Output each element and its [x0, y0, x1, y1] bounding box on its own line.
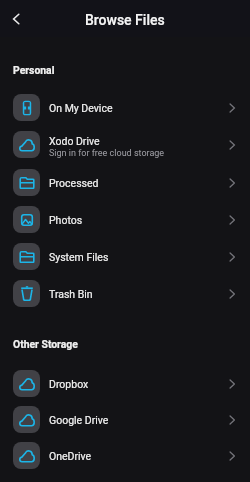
button[interactable]: System Files	[0, 238, 250, 275]
staticText: On My Device	[49, 102, 113, 114]
staticText: Browse Files	[85, 12, 165, 28]
staticText: Personal	[13, 64, 55, 76]
staticText: Processed	[49, 177, 99, 189]
button[interactable]: Dropbox	[0, 365, 250, 402]
staticText: OneDrive	[49, 450, 92, 462]
staticText: Photos	[49, 214, 83, 226]
button[interactable]: Google Drive	[0, 401, 250, 438]
button[interactable]: Back	[3, 6, 29, 32]
staticText: Dropbox	[49, 378, 89, 390]
button[interactable]: OneDrive	[0, 437, 250, 474]
staticText: Xodo Drive	[49, 135, 100, 147]
staticText: Other Storage	[13, 338, 78, 350]
button[interactable]: On My Device	[0, 89, 250, 126]
button[interactable]: Trash Bin	[0, 275, 250, 312]
staticText: Google Drive	[49, 414, 109, 426]
staticText: System Files	[49, 251, 109, 263]
button[interactable]: Processed	[0, 164, 250, 201]
button[interactable]: Xodo Drive	[0, 126, 250, 163]
staticText: Sign in for free cloud storage	[49, 148, 165, 159]
staticText: Trash Bin	[49, 288, 93, 300]
button[interactable]: Photos	[0, 201, 250, 238]
